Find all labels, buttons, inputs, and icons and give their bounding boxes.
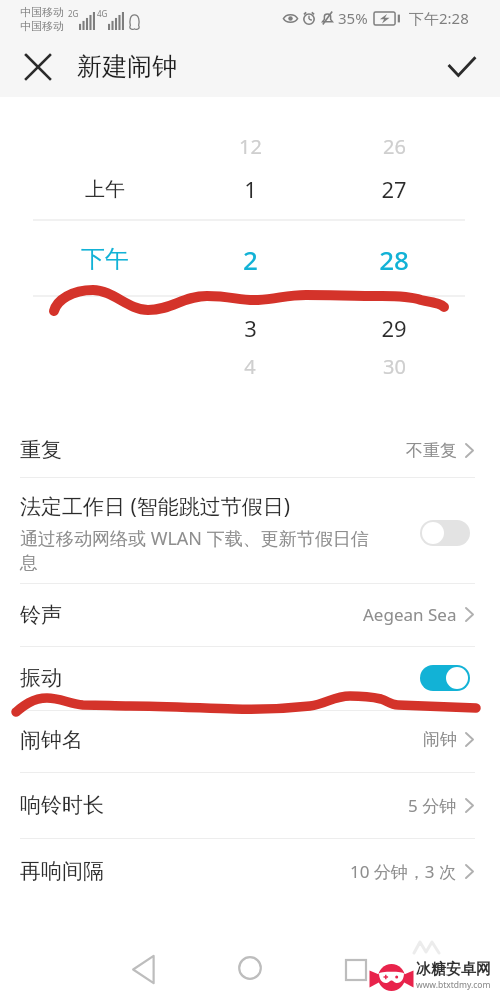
staticText: 28 <box>379 242 409 277</box>
button[interactable]: Close <box>14 43 62 91</box>
staticText: 4 <box>244 353 256 380</box>
staticText: 中国移动 <box>20 5 64 19</box>
staticText: 上午 <box>85 177 125 202</box>
button[interactable]: Switch on <box>420 665 470 691</box>
button[interactable]: 4 <box>188 344 312 388</box>
button[interactable]: 响铃时长 <box>0 772 500 838</box>
staticText: 10 分钟，3 次 <box>350 860 457 883</box>
button[interactable]: 铃声 <box>0 583 500 646</box>
staticText: 重复 <box>20 437 62 463</box>
staticText: 30 <box>383 353 406 380</box>
staticText: 通过移动网络或 WLAN 下载、更新节假日信息 <box>20 526 380 574</box>
button[interactable]: 重复 <box>0 423 500 477</box>
staticText: 再响间隔 <box>20 858 104 884</box>
button[interactable]: 1 <box>188 167 312 211</box>
staticText: 27 <box>381 174 407 204</box>
staticText: Aegean Sea <box>363 603 457 626</box>
button[interactable]: 上午 <box>43 167 167 211</box>
button[interactable]: 振动 <box>0 646 500 710</box>
staticText: 5 分钟 <box>408 794 457 817</box>
staticText: 闹钟 <box>423 729 457 750</box>
staticText: 35% <box>338 8 368 28</box>
button[interactable]: 3 <box>188 306 312 350</box>
staticText: 响铃时长 <box>20 792 104 818</box>
staticText: 3 <box>244 313 257 343</box>
staticText: 法定工作日 (智能跳过节假日) <box>20 492 291 521</box>
staticText: 冰糖安卓网 <box>416 960 491 979</box>
button[interactable]: Confirm <box>438 43 486 91</box>
staticText: 1 <box>244 174 257 204</box>
staticText: 12 <box>239 133 262 160</box>
staticText: 下午 <box>81 244 129 274</box>
button[interactable]: 闹钟名 <box>0 708 500 771</box>
staticText: 闹钟名 <box>20 727 83 753</box>
button[interactable]: 27 <box>332 167 456 211</box>
staticText: 振动 <box>20 665 62 691</box>
button[interactable]: 12 <box>188 124 312 168</box>
staticText: 2G <box>68 8 79 19</box>
staticText: 4G <box>97 8 108 19</box>
staticText: 2 <box>243 242 258 277</box>
button[interactable]: Switch off <box>420 520 470 546</box>
button[interactable]: 再响间隔 <box>0 841 500 901</box>
staticText: 下午2:28 <box>409 8 469 28</box>
button[interactable]: 30 <box>332 344 456 388</box>
staticText: 26 <box>383 133 406 160</box>
staticText: 新建闹钟 <box>77 51 177 82</box>
button[interactable]: 下午 <box>43 237 167 281</box>
button[interactable]: Home <box>226 944 274 992</box>
staticText: 铃声 <box>20 602 62 628</box>
button[interactable]: 29 <box>332 306 456 350</box>
button[interactable]: Back <box>119 945 167 993</box>
button[interactable]: 26 <box>332 124 456 168</box>
button[interactable]: 法定工作日 (智能跳过节假日) <box>0 477 500 583</box>
button[interactable]: 28 <box>332 237 456 281</box>
staticText: 中国移动 <box>20 19 64 33</box>
staticText: www.btxtdmy.com <box>416 979 491 991</box>
button[interactable]: 2 <box>188 237 312 281</box>
staticText: 不重复 <box>406 440 457 461</box>
button[interactable]: Recents <box>332 946 380 994</box>
staticText: 29 <box>381 313 407 343</box>
